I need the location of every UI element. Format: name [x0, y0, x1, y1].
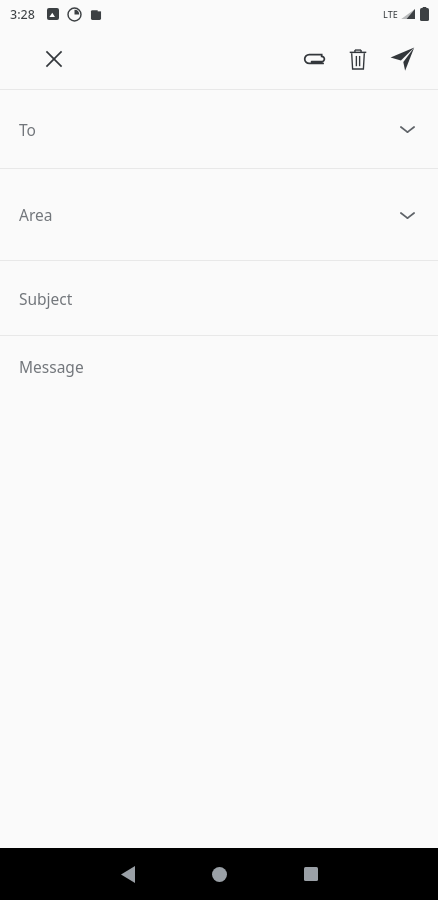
staticText: LTE — [383, 8, 398, 20]
button[interactable]: Expand Area — [392, 200, 422, 230]
button[interactable]: Subject — [0, 261, 438, 335]
staticText: To — [19, 119, 36, 140]
button[interactable]: Expand Recipients — [392, 114, 422, 144]
staticText: Message — [19, 356, 84, 377]
button[interactable]: Back — [102, 848, 154, 900]
button[interactable]: Recent apps — [285, 848, 337, 900]
button[interactable]: Send — [380, 37, 424, 81]
button[interactable]: Message — [0, 336, 438, 848]
button[interactable]: Area — [0, 169, 438, 260]
button[interactable]: Home — [193, 848, 245, 900]
button[interactable]: Delete draft — [336, 37, 380, 81]
button[interactable]: To — [0, 90, 438, 168]
staticText: 3:28 — [10, 6, 35, 23]
button[interactable]: Attach file — [292, 37, 336, 81]
staticText: Area — [19, 204, 53, 225]
staticText: Subject — [19, 288, 73, 309]
button[interactable]: Close — [30, 35, 78, 83]
